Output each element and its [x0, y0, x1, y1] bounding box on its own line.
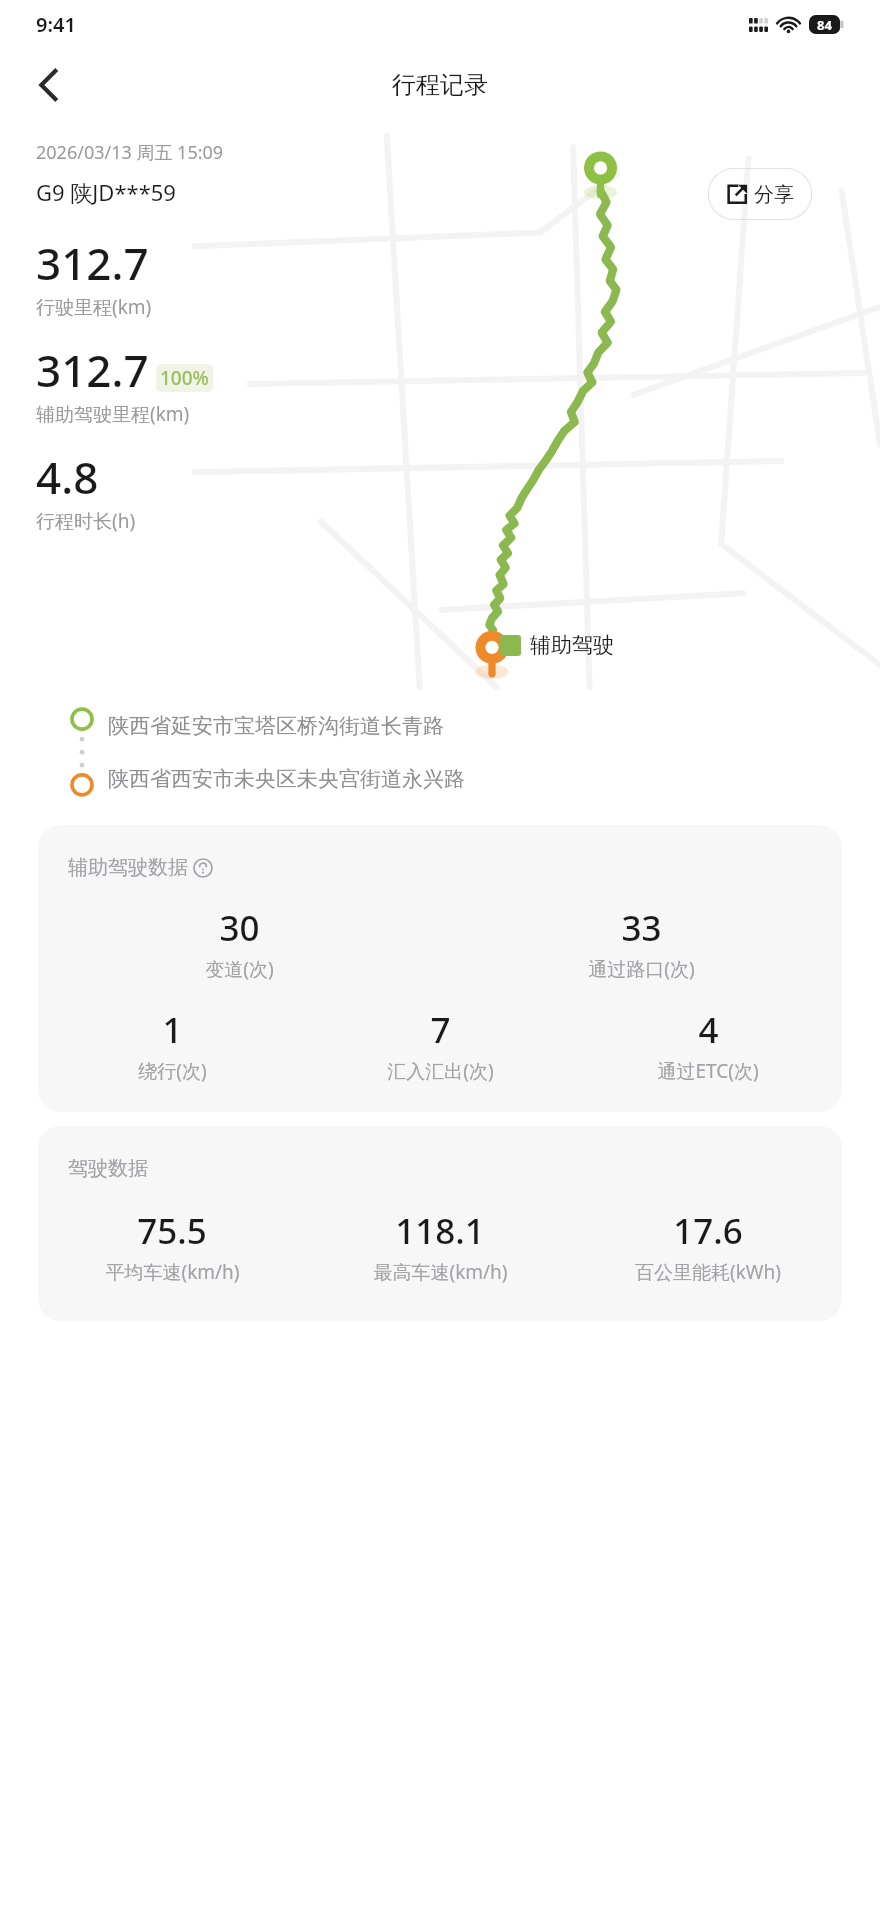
staticText: 分享	[754, 182, 794, 207]
staticText: 7	[430, 1006, 451, 1054]
staticText: 4	[698, 1006, 719, 1054]
staticText: G9 陕JD***59	[36, 177, 176, 207]
staticText: 汇入汇出(次)	[387, 1058, 494, 1084]
staticText: 通过ETC(次)	[657, 1058, 759, 1084]
staticText: 84	[817, 16, 832, 34]
staticText: 17.6	[673, 1207, 743, 1255]
staticText: 行程记录	[392, 70, 488, 100]
staticText: 驾驶数据	[68, 1156, 148, 1181]
button[interactable]: 分享	[708, 168, 812, 220]
staticText: 百公里能耗(kWh)	[635, 1259, 781, 1285]
staticText: 辅助驾驶	[530, 632, 614, 658]
staticText: 最高车速(km/h)	[373, 1259, 508, 1285]
staticText: 30	[219, 904, 260, 952]
staticText: 75.5	[137, 1207, 207, 1255]
staticText: 118.1	[395, 1207, 485, 1255]
staticText: 陕西省延安市宝塔区桥沟街道长青路	[108, 713, 444, 739]
staticText: 陕西省西安市未央区未央宫街道永兴路	[108, 766, 465, 792]
staticText: 变道(次)	[205, 956, 274, 982]
button[interactable]: 驾驶数据	[38, 1126, 842, 1321]
staticText: 行程时长(h)	[36, 508, 136, 534]
staticText: 312.7	[36, 233, 149, 293]
staticText: 4.8	[36, 447, 99, 507]
staticText: 通过路口(次)	[588, 956, 695, 982]
staticText: 行驶里程(km)	[36, 294, 152, 320]
staticText: 100%	[160, 365, 209, 391]
staticText: 33	[621, 904, 662, 952]
staticText: 9:41	[36, 11, 76, 38]
staticText: 1	[162, 1006, 183, 1054]
staticText: 辅助驾驶数据	[68, 855, 188, 880]
button[interactable]: Back	[20, 57, 76, 113]
staticText: 2026/03/13 周五 15:09	[36, 140, 224, 165]
staticText: 312.7	[36, 340, 149, 400]
button[interactable]: 辅助驾驶数据	[38, 825, 842, 1112]
staticText: 平均车速(km/h)	[105, 1259, 240, 1285]
staticText: 辅助驾驶里程(km)	[36, 401, 190, 427]
staticText: 绕行(次)	[138, 1058, 207, 1084]
